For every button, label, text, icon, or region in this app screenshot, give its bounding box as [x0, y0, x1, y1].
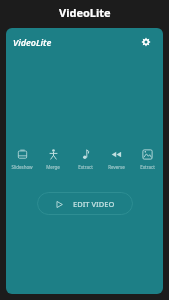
- staticText: Merge: [46, 164, 60, 170]
- staticText: Extract: [78, 164, 93, 170]
- staticText: VideoLite: [59, 5, 111, 20]
- button[interactable]: Extract: [70, 148, 100, 170]
- button[interactable]: Reverse: [101, 148, 131, 170]
- button[interactable]: Slideshow: [7, 148, 37, 170]
- staticText: EDIT VIDEO: [73, 199, 115, 209]
- button[interactable]: EDIT VIDEO: [37, 192, 133, 215]
- staticText: VideoLite: [13, 36, 52, 48]
- button[interactable]: Merge: [38, 148, 68, 170]
- button[interactable]: Extract: [132, 148, 162, 170]
- staticText: Extract: [140, 164, 155, 170]
- staticText: Reverse: [108, 164, 125, 170]
- button[interactable]: Settings: [136, 32, 156, 52]
- staticText: Slideshow: [11, 164, 33, 170]
